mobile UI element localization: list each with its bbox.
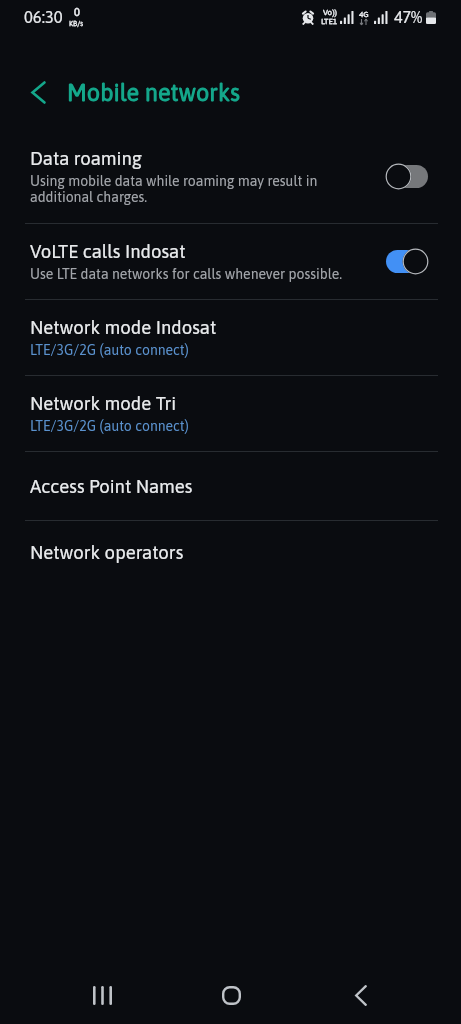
button[interactable]: Back bbox=[338, 972, 384, 1018]
staticText: 0 bbox=[74, 6, 80, 19]
staticText: VoLTE calls Indosat bbox=[30, 241, 186, 262]
staticText: 47% bbox=[394, 8, 423, 26]
staticText: Data roaming bbox=[30, 148, 142, 169]
button[interactable]: Data roaming bbox=[0, 130, 461, 223]
button[interactable]: Network operators bbox=[0, 521, 461, 583]
staticText: LTE1 bbox=[321, 17, 338, 26]
staticText: LTE/3G/2G (auto connect) bbox=[30, 418, 189, 434]
button[interactable]: Access Point Names bbox=[0, 452, 461, 520]
staticText: Mobile networks bbox=[67, 79, 240, 106]
staticText: Using mobile data while roaming may resu… bbox=[30, 173, 318, 205]
button[interactable]: Recent apps bbox=[79, 972, 125, 1018]
button[interactable]: Back bbox=[19, 73, 57, 111]
staticText: Vo)) bbox=[323, 8, 337, 17]
button[interactable]: Switch off bbox=[385, 163, 429, 190]
staticText: 4G bbox=[359, 10, 369, 19]
staticText: Use LTE data networks for calls whenever… bbox=[30, 266, 343, 282]
button[interactable]: Home bbox=[208, 972, 254, 1018]
button[interactable]: VoLTE calls Indosat bbox=[0, 224, 461, 299]
staticText: Access Point Names bbox=[30, 476, 193, 497]
button[interactable]: Network mode Tri bbox=[0, 376, 461, 451]
staticText: Network operators bbox=[30, 542, 184, 563]
staticText: 06:30 bbox=[24, 8, 63, 27]
button[interactable]: Network mode Indosat bbox=[0, 300, 461, 375]
button[interactable]: Switch on bbox=[385, 248, 429, 275]
staticText: KB/s bbox=[69, 19, 84, 27]
staticText: LTE/3G/2G (auto connect) bbox=[30, 342, 189, 358]
staticText: Network mode Indosat bbox=[30, 317, 217, 338]
staticText: Network mode Tri bbox=[30, 393, 177, 414]
